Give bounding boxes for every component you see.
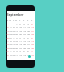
staticText: 31 [6, 49, 9, 52]
staticText: 10 [15, 39, 18, 42]
staticText: 19 [19, 42, 22, 45]
staticText: 27 [19, 46, 22, 49]
staticText: 21 [27, 42, 30, 45]
staticText: 24 [12, 32, 15, 35]
staticText: 9 [10, 53, 12, 56]
staticText: T [13, 19, 15, 21]
staticText: 26 [19, 32, 22, 35]
staticText: 6 [27, 49, 29, 52]
staticText: M [9, 19, 12, 21]
staticText: 9 [16, 25, 18, 28]
staticText: 15 [31, 53, 34, 56]
staticText: 23 [6, 46, 9, 49]
staticText: 11 [15, 53, 18, 56]
staticText: 2 [19, 22, 21, 25]
staticText: 23 [9, 32, 12, 35]
staticText: 22 [6, 32, 9, 35]
staticText: 8 [13, 25, 15, 28]
staticText: 25 [12, 46, 15, 49]
staticText: 26 [15, 46, 18, 49]
staticText: 16 [9, 42, 12, 45]
staticText: 17 [15, 29, 18, 32]
staticText: 14 [6, 29, 9, 32]
staticText: T [19, 19, 21, 21]
staticText: 11 [19, 39, 22, 42]
staticText: 7 [10, 25, 12, 28]
staticText: 10 [12, 53, 15, 56]
staticText: 16 [12, 29, 15, 32]
staticText: 12 [27, 25, 30, 28]
staticText: 27 [23, 32, 26, 35]
staticText: 3 [23, 22, 25, 25]
staticText: 20 [23, 42, 26, 45]
staticText: 28 [27, 32, 30, 35]
staticText: 24 [9, 46, 12, 49]
staticText: 22 [31, 42, 34, 45]
staticText: 4 [19, 49, 21, 52]
staticText: 20 [27, 29, 30, 32]
staticText: 31 [9, 36, 12, 39]
staticText: 2 [16, 36, 18, 39]
staticText: 13 [27, 39, 30, 42]
staticText: 2 [13, 49, 15, 52]
staticText: 6 [31, 36, 33, 39]
staticText: 15 [6, 42, 9, 45]
staticText: 18 [19, 29, 22, 32]
staticText: 11 [23, 25, 26, 28]
staticText: 14 [31, 39, 34, 42]
staticText: 19 [23, 29, 26, 32]
staticText: W [15, 19, 18, 21]
staticText: 30 [31, 46, 34, 49]
staticText: 4 [23, 36, 25, 39]
staticText: 3 [16, 49, 18, 52]
staticText: 3 [19, 36, 21, 39]
staticText: 12 [19, 53, 22, 56]
staticText: 1 [13, 36, 15, 39]
staticText: 9 [13, 39, 15, 42]
staticText: 7 [7, 39, 9, 42]
staticText: 5 [23, 49, 25, 52]
staticText: S [27, 19, 29, 21]
staticText: S [31, 19, 33, 21]
staticText: 28 [23, 46, 26, 49]
staticText: 10 [19, 25, 22, 28]
staticText: 17 [12, 42, 15, 45]
staticText: 13 [23, 53, 26, 56]
staticText: 12 [23, 39, 26, 42]
staticText: 30 [6, 36, 9, 39]
staticText: 1 [10, 49, 12, 52]
staticText: 21 [31, 29, 34, 32]
staticText: 8 [7, 53, 9, 56]
staticText: 18 [15, 42, 18, 45]
staticText: 1 [16, 22, 18, 25]
staticText: 6 [7, 25, 9, 28]
staticText: 7 [31, 49, 33, 52]
staticText: 4 [27, 22, 29, 25]
staticText: 29 [31, 32, 34, 35]
staticText: 8 [10, 39, 12, 42]
staticText: 5 [31, 22, 33, 25]
button[interactable]: September [7, 13, 24, 17]
staticText: 5 [27, 36, 29, 39]
staticText: F [23, 19, 25, 21]
button[interactable]: Add event [28, 55, 31, 58]
staticText: 15 [9, 29, 12, 32]
staticText: 25 [15, 32, 18, 35]
staticText: 13 [31, 25, 34, 28]
staticText: September [7, 13, 24, 17]
staticText: S [7, 19, 9, 21]
staticText: 14 [27, 53, 30, 56]
staticText: 29 [27, 46, 30, 49]
